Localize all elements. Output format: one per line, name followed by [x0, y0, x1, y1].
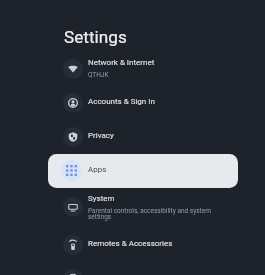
button[interactable]: Help & Feedback	[48, 262, 238, 275]
staticText: QTHJK	[88, 71, 217, 79]
staticText: Apps	[88, 165, 107, 174]
staticText: Parental controls, accessibility and sys…	[88, 207, 217, 221]
staticText: Network & Internet	[88, 58, 155, 67]
staticText: System	[88, 194, 115, 203]
button[interactable]: Apps	[48, 154, 238, 188]
button[interactable]: Accounts & Sign In	[48, 86, 238, 120]
button[interactable]: Network & Internet	[48, 52, 238, 86]
button[interactable]: System	[48, 188, 238, 226]
button[interactable]: Privacy	[48, 120, 238, 154]
staticText: Remotes & Accessories	[88, 239, 173, 248]
button[interactable]: Remotes & Accessories	[48, 228, 238, 262]
staticText: Accounts & Sign In	[88, 97, 155, 106]
staticText: Privacy	[88, 131, 114, 140]
staticText: Settings	[64, 27, 127, 47]
